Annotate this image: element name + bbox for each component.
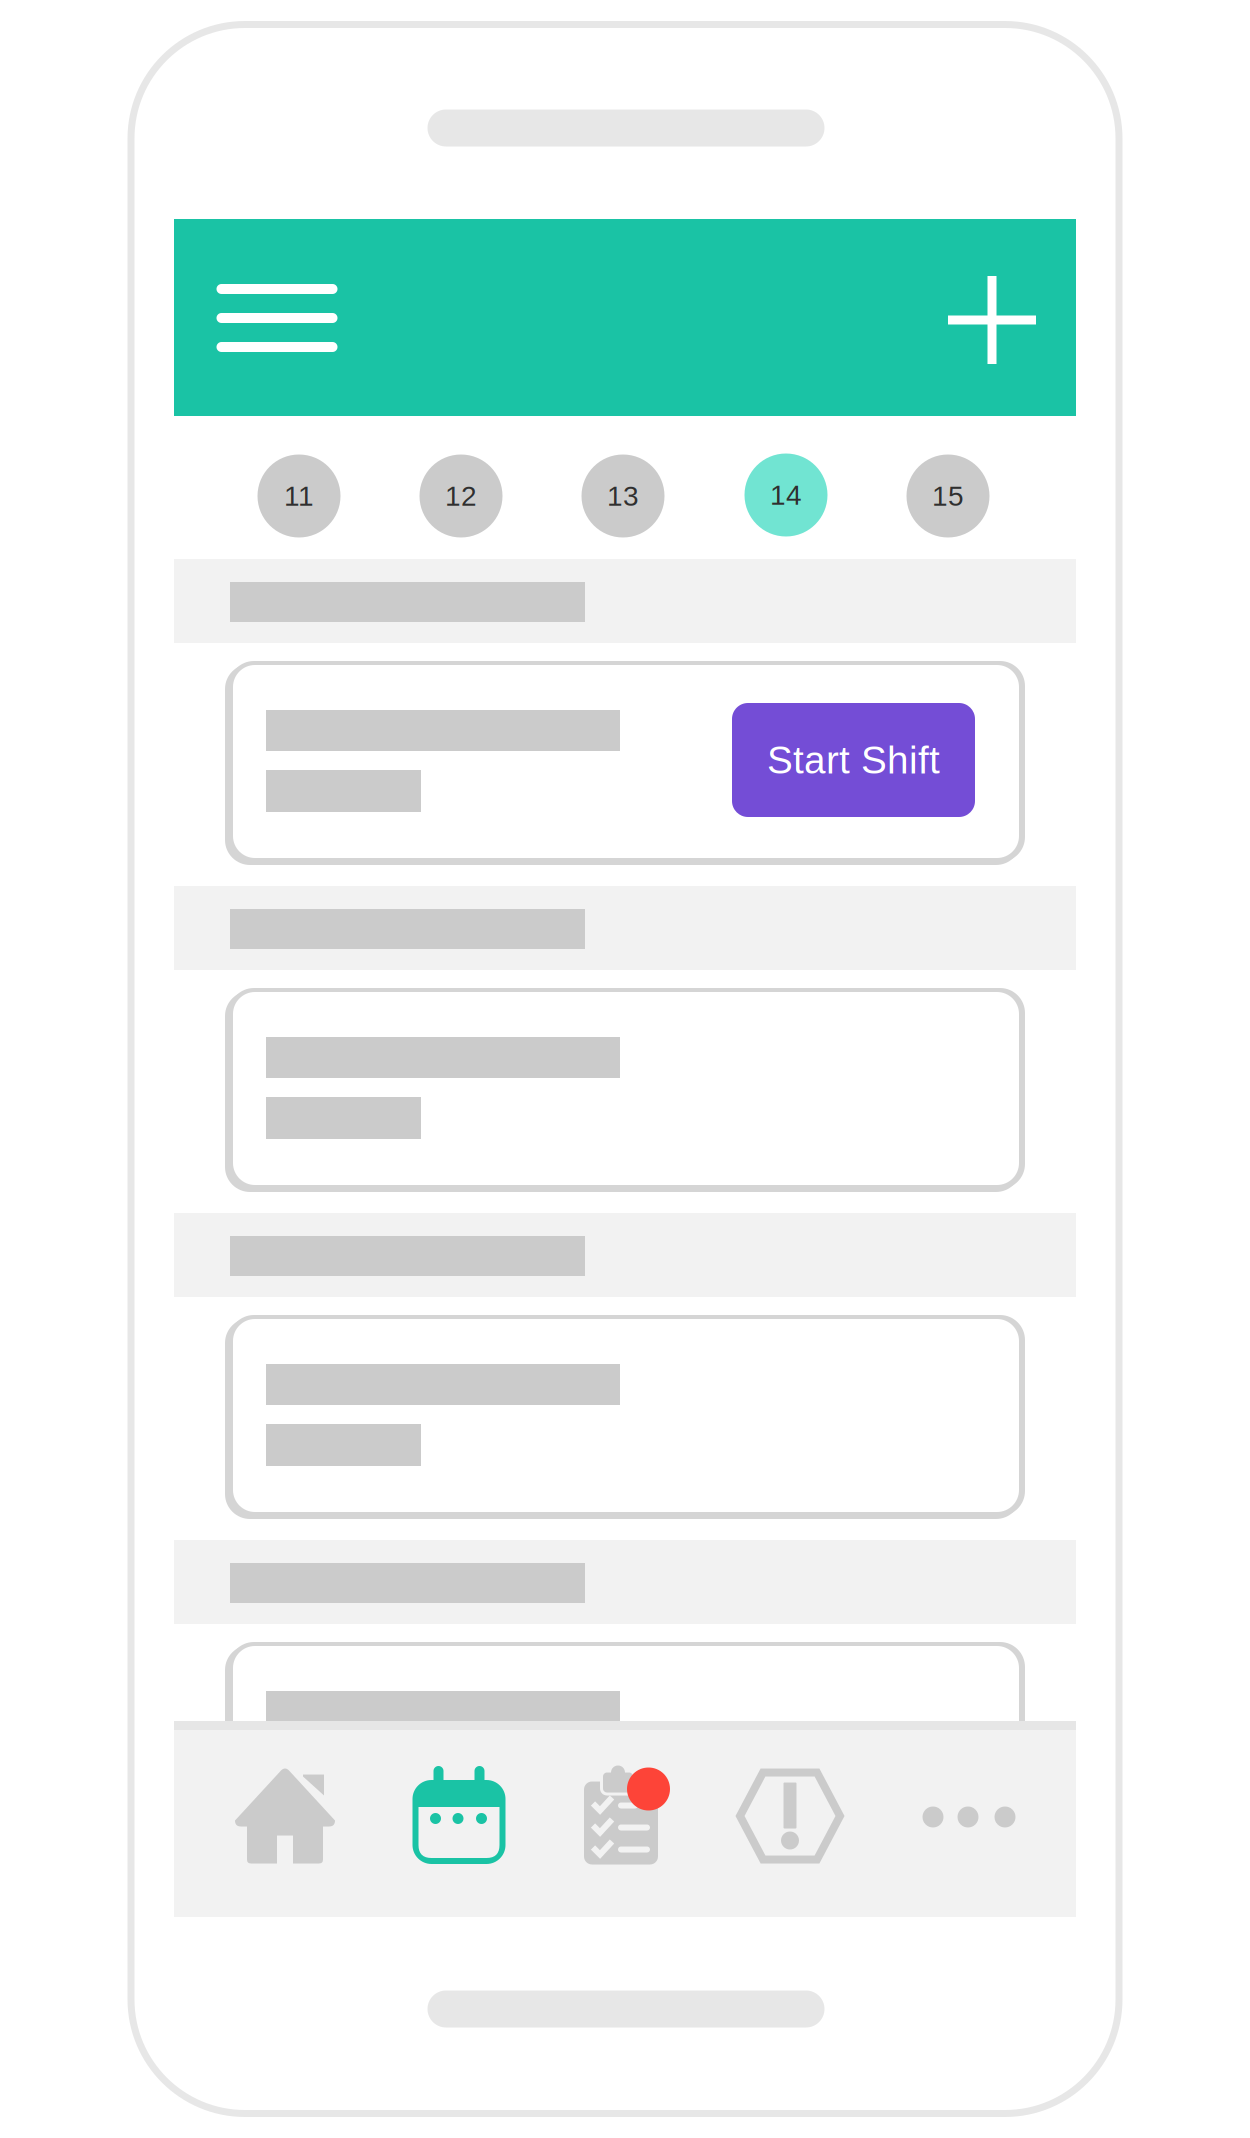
staticText: 12 <box>445 480 477 512</box>
button[interactable]: Tasks <box>543 1721 721 1917</box>
button[interactable]: Menu <box>182 248 372 388</box>
button[interactable]: 13 <box>581 454 664 537</box>
button[interactable]: Shift details <box>225 1642 1025 1846</box>
staticText: 15 <box>932 480 964 512</box>
button[interactable]: Start Shift <box>732 703 975 817</box>
button[interactable]: 14 <box>744 453 827 536</box>
button[interactable]: Shift details <box>225 1315 1025 1519</box>
button[interactable]: Shift details <box>225 661 1025 865</box>
button[interactable]: 12 <box>419 454 502 537</box>
button[interactable]: Schedule <box>370 1721 548 1917</box>
staticText: 11 <box>284 480 314 512</box>
staticText: 14 <box>770 479 802 511</box>
button[interactable]: Home <box>196 1721 374 1917</box>
staticText: 13 <box>607 480 639 512</box>
button[interactable]: 15 <box>906 454 989 537</box>
button[interactable]: Shift details <box>225 988 1025 1192</box>
button[interactable]: Add <box>922 250 1062 390</box>
staticText: Start Shift <box>767 738 940 782</box>
button[interactable]: Alerts <box>701 1721 879 1917</box>
button[interactable]: 11 <box>257 454 340 537</box>
button[interactable]: More <box>880 1721 1058 1917</box>
